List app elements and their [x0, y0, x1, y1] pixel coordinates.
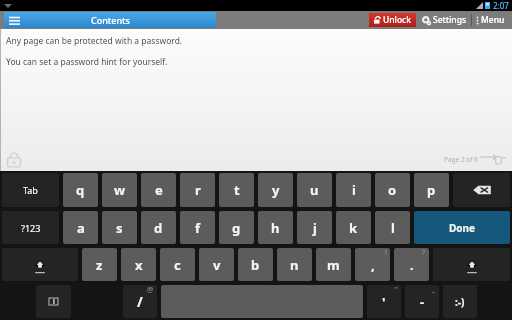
- staticText: e: [155, 181, 163, 199]
- staticText: m: [327, 256, 340, 274]
- button[interactable]: ?123: [2, 211, 59, 244]
- staticText: Any page can be protected with a passwor…: [6, 35, 183, 47]
- staticText: Contents: [91, 14, 130, 26]
- staticText: z: [96, 256, 103, 274]
- button[interactable]: n: [277, 248, 312, 281]
- staticText: v: [213, 256, 221, 274]
- staticText: g: [232, 219, 241, 237]
- button[interactable]: i: [336, 173, 371, 207]
- staticText: k: [349, 219, 358, 237]
- button[interactable]: h: [258, 211, 293, 244]
- button[interactable]: f: [180, 211, 215, 244]
- staticText: o: [388, 181, 397, 199]
- button[interactable]: z: [82, 248, 117, 281]
- button[interactable]: Navigation drawer: [4, 12, 216, 28]
- staticText: !: [385, 248, 387, 258]
- staticText: w: [114, 181, 126, 199]
- staticText: ?: [422, 248, 426, 258]
- staticText: Tab: [23, 184, 38, 196]
- button[interactable]: -: [405, 285, 439, 318]
- staticText: j: [313, 219, 317, 237]
- staticText: a: [77, 219, 85, 237]
- staticText: i: [352, 181, 356, 199]
- staticText: q: [76, 181, 85, 199]
- button[interactable]: /: [123, 285, 157, 318]
- button[interactable]: d: [141, 211, 176, 244]
- staticText: Unlock: [383, 14, 412, 26]
- button[interactable]: c: [160, 248, 195, 281]
- button[interactable]: w: [102, 173, 137, 207]
- staticText: /: [137, 292, 143, 311]
- staticText: You can set a password hint for yourself…: [6, 56, 168, 68]
- button[interactable]: Menu: [476, 13, 505, 27]
- button[interactable]: ,: [355, 248, 390, 281]
- button[interactable]: j: [297, 211, 332, 244]
- staticText: n: [290, 256, 299, 274]
- button[interactable]: Unlock: [373, 13, 412, 27]
- staticText: -: [420, 293, 425, 311]
- staticText: r: [195, 181, 201, 199]
- button[interactable]: r: [180, 173, 215, 207]
- staticText: c: [174, 256, 181, 274]
- staticText: ': [382, 293, 386, 311]
- button[interactable]: g: [219, 211, 254, 244]
- staticText: Done: [449, 221, 476, 235]
- staticText: ": [395, 285, 398, 295]
- button[interactable]: :-): [443, 285, 477, 318]
- staticText: p: [427, 181, 436, 199]
- button[interactable]: Navigation drawer: [9, 15, 20, 26]
- button[interactable]: q: [63, 173, 98, 207]
- button[interactable]: Settings: [422, 13, 467, 27]
- staticText: l: [391, 219, 395, 237]
- button[interactable]: o: [375, 173, 410, 207]
- button[interactable]: Done: [414, 211, 510, 244]
- staticText: b: [251, 256, 260, 274]
- button[interactable]: u: [297, 173, 332, 207]
- button[interactable]: Shift: [2, 248, 78, 281]
- button[interactable]: s: [102, 211, 137, 244]
- staticText: f: [195, 219, 201, 237]
- button[interactable]: y: [258, 173, 293, 207]
- button[interactable]: ': [367, 285, 401, 318]
- staticText: Settings: [433, 14, 467, 26]
- button[interactable]: a: [63, 211, 98, 244]
- button[interactable]: p: [414, 173, 449, 207]
- button[interactable]: Backspace: [453, 173, 510, 207]
- staticText: ,: [371, 256, 375, 274]
- staticText: s: [116, 219, 123, 237]
- staticText: Page 2 of 6: [444, 155, 478, 164]
- button[interactable]: Tab: [2, 173, 59, 207]
- staticText: .: [410, 256, 414, 274]
- button[interactable]: t: [219, 173, 254, 207]
- button[interactable]: .: [394, 248, 429, 281]
- staticText: y: [272, 181, 280, 199]
- staticText: t: [234, 181, 240, 199]
- staticText: Menu: [481, 14, 505, 26]
- staticText: h: [271, 219, 280, 237]
- button[interactable]: b: [238, 248, 273, 281]
- button[interactable]: m: [316, 248, 351, 281]
- staticText: d: [154, 219, 163, 237]
- button[interactable]: l: [375, 211, 410, 244]
- staticText: u: [310, 181, 319, 199]
- button[interactable]: Shift: [433, 248, 510, 281]
- staticText: :-): [455, 295, 465, 309]
- button[interactable]: k: [336, 211, 371, 244]
- button[interactable]: Keyboard layout: [36, 285, 71, 318]
- staticText: x: [135, 256, 143, 274]
- staticText: 2:07: [493, 0, 509, 11]
- staticText: @: [147, 285, 154, 295]
- button[interactable]: e: [141, 173, 176, 207]
- button[interactable]: x: [121, 248, 156, 281]
- staticText: _: [432, 285, 436, 295]
- button[interactable]: v: [199, 248, 234, 281]
- staticText: ?123: [21, 222, 41, 234]
